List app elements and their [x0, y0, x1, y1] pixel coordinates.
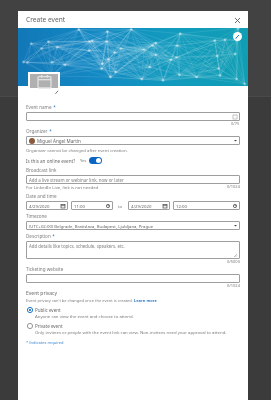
- staticText: Description: [26, 233, 51, 239]
- button[interactable]: [26, 112, 240, 121]
- staticText: *: [51, 233, 55, 239]
- button[interactable]: 4/29/2020: [128, 201, 170, 210]
- button[interactable]: [26, 274, 240, 283]
- staticText: 11:00: [74, 203, 85, 209]
- staticText: Event privacy can't be changed once the …: [26, 298, 134, 303]
- button[interactable]: Add details like topics, schedule, speak…: [26, 241, 240, 259]
- button[interactable]: Close: [231, 14, 243, 26]
- staticText: Only invitees or people with the event l…: [35, 329, 227, 335]
- button[interactable]: Public event: [26, 306, 240, 319]
- button[interactable]: Edit logo: [53, 88, 61, 96]
- staticText: Anyone can view the event and choose to …: [35, 313, 134, 319]
- staticText: Broadcast link: [26, 167, 57, 173]
- staticText: to: [118, 203, 123, 209]
- staticText: 4/29/2020: [29, 203, 50, 209]
- staticText: *: [52, 104, 56, 110]
- button[interactable]: Event logo: [30, 74, 58, 88]
- staticText: 0/1024: [227, 184, 240, 189]
- button[interactable]: Miguel Ángel Martín: [26, 136, 240, 145]
- button[interactable]: 4/29/2020: [26, 201, 68, 210]
- staticText: (UTC+02:00) Belgrade, Bratislava, Budape…: [29, 223, 154, 229]
- staticText: Yes: [80, 158, 87, 163]
- staticText: 12:00: [176, 203, 187, 209]
- staticText: Organizer cannot be changed after event …: [26, 147, 128, 153]
- staticText: Event privacy: [26, 290, 58, 297]
- staticText: 0/1024: [227, 283, 240, 288]
- staticText: Create event: [26, 15, 66, 24]
- staticText: 0/5000: [227, 259, 240, 264]
- staticText: Miguel Ángel Martín: [37, 138, 81, 144]
- staticText: *: [48, 128, 52, 134]
- button[interactable]: 12:00: [173, 201, 240, 210]
- staticText: Add details like topics, schedule, speak…: [29, 243, 125, 249]
- staticText: * Indicates required: [26, 340, 64, 345]
- button[interactable]: Learn more: [134, 298, 157, 303]
- staticText: Date and time: [26, 193, 57, 199]
- button[interactable]: 11:00: [71, 201, 113, 210]
- staticText: 0/75: [231, 121, 240, 126]
- button[interactable]: Edit cover image: [233, 32, 242, 41]
- staticText: For LinkedIn Live, link is not needed: [26, 184, 99, 190]
- staticText: Add a live stream or webinar link, now o…: [29, 177, 124, 183]
- button[interactable]: Private event: [26, 322, 240, 335]
- staticText: Event name: [26, 104, 52, 110]
- button[interactable]: Online event toggle: [89, 157, 102, 164]
- staticText: Public event: [35, 307, 61, 313]
- staticText: Private event: [35, 323, 63, 329]
- staticText: Ticketing website: [26, 266, 64, 272]
- staticText: 4/29/2020: [131, 203, 152, 209]
- button[interactable]: (UTC+02:00) Belgrade, Bratislava, Budape…: [26, 221, 240, 230]
- staticText: Timezone: [26, 213, 47, 219]
- staticText: Is this an online event?: [26, 158, 76, 164]
- button[interactable]: Add a live stream or webinar link, now o…: [26, 175, 240, 184]
- staticText: Organizer: [26, 128, 48, 134]
